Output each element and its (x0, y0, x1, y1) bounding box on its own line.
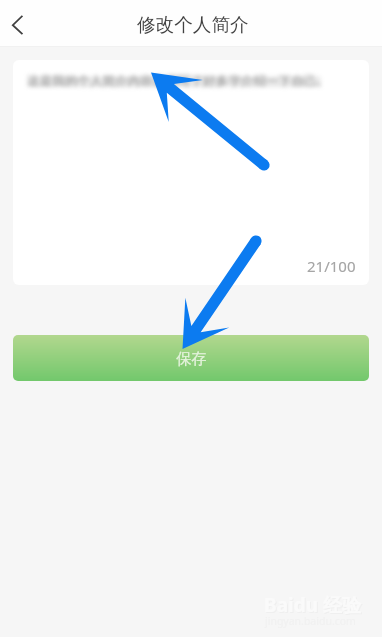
button[interactable]: 保存 (13, 335, 369, 381)
staticText: 这是我的个人简介内容这里写了好多字介绍一下自己。 (27, 73, 330, 89)
staticText: 修改个人简介 (137, 13, 249, 36)
staticText: 21/100 (307, 256, 356, 276)
button[interactable]: 这是我的个人简介内容这里写了好多字介绍一下自己。 (13, 60, 369, 285)
button[interactable]: Back (0, 2, 44, 46)
staticText: 保存 (176, 349, 207, 369)
